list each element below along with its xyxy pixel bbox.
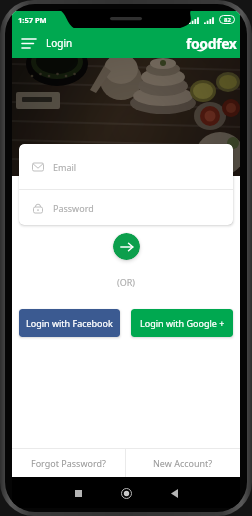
button[interactable]: Password [19, 190, 233, 225]
staticText: foodfex [186, 34, 237, 53]
button[interactable]: Login with Facebook [19, 309, 120, 337]
staticText: Email [53, 161, 77, 173]
button[interactable]: New Account? [126, 449, 240, 477]
button[interactable]: Recent apps [68, 483, 88, 503]
staticText: New Account? [153, 457, 213, 469]
staticText: Password [53, 202, 94, 214]
button[interactable]: Forgot Password? [12, 449, 125, 477]
staticText: (OR) [19, 276, 233, 288]
staticText: Forgot Password? [31, 457, 106, 469]
staticText: Login with Facebook [26, 317, 113, 329]
button[interactable]: Open navigation menu [19, 33, 39, 53]
staticText: Login with Google + [140, 317, 225, 329]
button[interactable]: Home [116, 483, 136, 503]
button[interactable]: Back [164, 483, 184, 503]
staticText: Login [46, 36, 73, 50]
button[interactable]: Login with Google + [131, 309, 233, 337]
staticText: 82 [224, 16, 231, 24]
button[interactable]: Email [19, 144, 233, 189]
button[interactable]: Sign in [113, 233, 140, 260]
staticText: 1:57 PM [18, 15, 47, 25]
button[interactable]: foodfex [186, 34, 237, 53]
